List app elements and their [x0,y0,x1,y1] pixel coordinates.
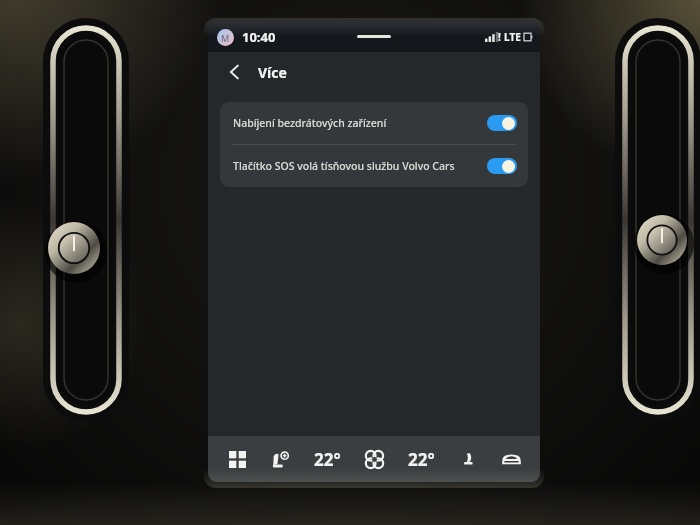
button[interactable]: Profile [217,29,234,46]
staticText: M [221,32,230,44]
staticText: 22° [314,448,341,471]
button[interactable]: Tlačítko SOS volá tísňovou službu Volvo … [220,145,528,187]
button[interactable]: Car settings [494,439,528,479]
staticText: Nabíjení bezdrátových zařízení [233,116,479,130]
staticText: 22° [408,448,435,471]
staticText: Tlačítko SOS volá tísňovou službu Volvo … [233,159,479,173]
button[interactable]: Toggle on [487,115,517,131]
button[interactable]: 22° [306,439,348,479]
button[interactable]: Toggle on [487,158,517,174]
staticText: 10:40 [242,28,276,46]
staticText: Více [258,63,287,82]
button[interactable]: Apps [220,439,254,479]
button[interactable]: 22° [400,439,442,479]
button[interactable]: Nabíjení bezdrátových zařízení [220,102,528,144]
staticText: LTE [504,30,521,44]
button[interactable]: Back [222,59,248,85]
button[interactable]: Fan [357,439,391,479]
staticText: ! [498,30,501,44]
button[interactable]: Passenger seat heating [451,439,485,479]
button[interactable]: Driver seat heating [263,439,297,479]
